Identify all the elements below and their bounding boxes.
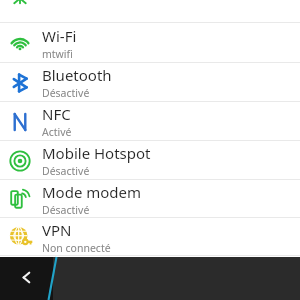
staticText: Désactivé <box>42 203 90 217</box>
staticText: Non connecté <box>42 241 111 255</box>
staticText: VPN <box>42 220 72 240</box>
button[interactable] <box>53 257 300 300</box>
staticText: Désactivé <box>42 86 90 100</box>
button[interactable]: Réseau mobile <box>0 0 300 23</box>
staticText: Activé <box>42 125 72 139</box>
button[interactable]: Bluetooth <box>0 63 300 102</box>
staticText: Wi-Fi <box>42 26 77 46</box>
staticText: Mobile Hotspot <box>42 143 151 163</box>
button[interactable]: Mode modem <box>0 180 300 218</box>
staticText: Bluetooth <box>42 65 112 85</box>
button[interactable]: VPN <box>0 218 300 256</box>
button[interactable]: NFC <box>0 102 300 141</box>
button[interactable]: Wi-Fi <box>0 23 300 63</box>
staticText: NFC <box>42 104 71 124</box>
staticText: Mode modem <box>42 182 142 202</box>
button[interactable]: Back <box>0 257 53 300</box>
button[interactable]: Mobile Hotspot <box>0 141 300 180</box>
staticText: Désactivé <box>42 164 90 178</box>
staticText: mtwifi <box>42 47 73 61</box>
